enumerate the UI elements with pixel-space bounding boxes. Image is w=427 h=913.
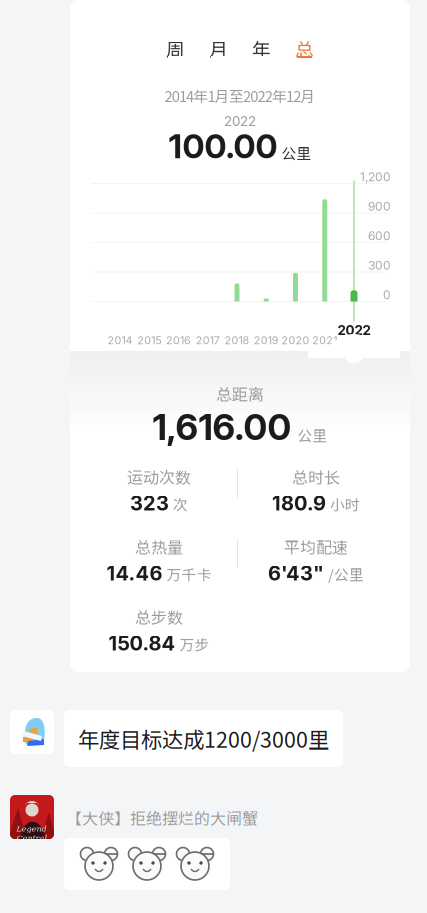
staticText: 总	[295, 35, 314, 62]
staticText: 总步数	[135, 605, 183, 628]
staticText: 公里	[281, 142, 311, 163]
staticText: Legend Central	[16, 824, 47, 843]
staticText: 2014年1月至2022年12月	[164, 85, 315, 106]
staticText: 年	[252, 35, 271, 62]
staticText: 总热量	[135, 535, 183, 558]
staticText: 周	[166, 35, 185, 62]
button[interactable]: 年	[240, 35, 283, 65]
staticText: 2014	[107, 334, 132, 347]
button[interactable]: 月	[197, 35, 240, 65]
staticText: 0	[383, 287, 391, 302]
staticText: 323	[130, 491, 169, 515]
staticText: 公里	[297, 424, 327, 445]
staticText: 次	[173, 493, 188, 514]
button[interactable]: 年度目标达成1200/3000里	[64, 710, 343, 767]
staticText: 2020	[281, 334, 309, 347]
staticText: 6'43"	[268, 561, 324, 585]
staticText: 600	[368, 228, 391, 243]
staticText: 100.00	[168, 126, 277, 166]
button[interactable]: 表情消息	[64, 838, 230, 890]
staticText: /公里	[328, 563, 364, 584]
staticText: 2018	[224, 334, 249, 347]
staticText: 2015	[137, 334, 161, 347]
staticText: 300	[368, 258, 391, 272]
staticText: 万千卡	[166, 563, 211, 584]
staticText: 【大侠】拒绝摆烂的大闸蟹	[66, 806, 258, 829]
staticText: 运动次数	[127, 465, 191, 488]
staticText: 小时	[330, 493, 360, 514]
staticText: 1,200	[360, 169, 391, 184]
staticText: 2022	[224, 113, 256, 129]
staticText: 总时长	[292, 465, 340, 488]
staticText: 年度目标达成1200/3000里	[78, 723, 329, 754]
staticText: 150.84	[108, 631, 175, 655]
staticText: 2021	[312, 334, 337, 347]
staticText: 万步	[179, 633, 209, 654]
button[interactable]: 发送者头像	[10, 710, 54, 754]
staticText: 180.9	[272, 491, 326, 515]
button[interactable]: 总	[283, 35, 326, 65]
staticText: 14.46	[106, 561, 162, 585]
button[interactable]: 周	[154, 35, 197, 65]
staticText: 月	[209, 35, 228, 62]
button[interactable]: 运动数据卡片	[70, 0, 410, 672]
staticText: 2022	[337, 322, 370, 338]
staticText: 1,616.00	[152, 405, 291, 449]
staticText: 2016	[166, 334, 191, 347]
staticText: 2017	[196, 334, 220, 347]
staticText: 2019	[254, 334, 279, 347]
button[interactable]: 发送者头像	[10, 795, 54, 839]
staticText: 总距离	[216, 382, 264, 405]
staticText: 900	[368, 199, 391, 213]
staticText: 平均配速	[284, 535, 348, 558]
